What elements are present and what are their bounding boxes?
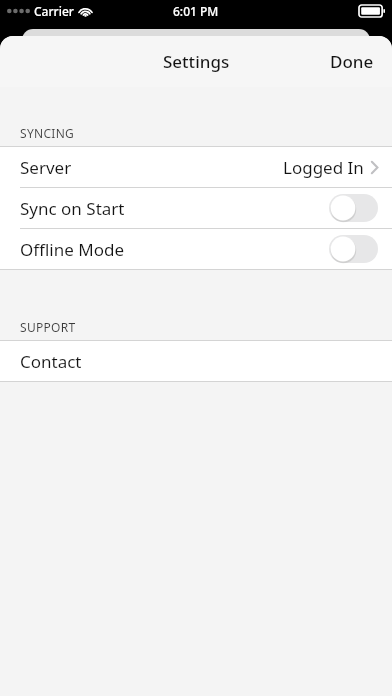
staticText: Sync on Start — [20, 197, 125, 220]
staticText: Settings — [163, 50, 230, 73]
staticText: 6:01 PM — [173, 3, 219, 19]
button[interactable]: Toggle, off — [329, 235, 378, 263]
staticText: Server — [20, 156, 72, 179]
button[interactable]: Offline Mode — [0, 229, 392, 269]
button[interactable]: Contact — [0, 341, 392, 381]
staticText: Offline Mode — [20, 238, 125, 261]
staticText: SYNCING — [20, 125, 75, 141]
staticText: Done — [330, 50, 374, 73]
staticText: Contact — [20, 350, 82, 373]
staticText: Logged In — [283, 156, 364, 179]
button[interactable]: Server — [0, 147, 392, 187]
staticText: Carrier — [34, 3, 74, 19]
button[interactable]: Sync on Start — [0, 188, 392, 228]
button[interactable]: Toggle, off — [329, 194, 378, 222]
staticText: SUPPORT — [20, 319, 76, 335]
button[interactable]: Done — [310, 36, 392, 87]
